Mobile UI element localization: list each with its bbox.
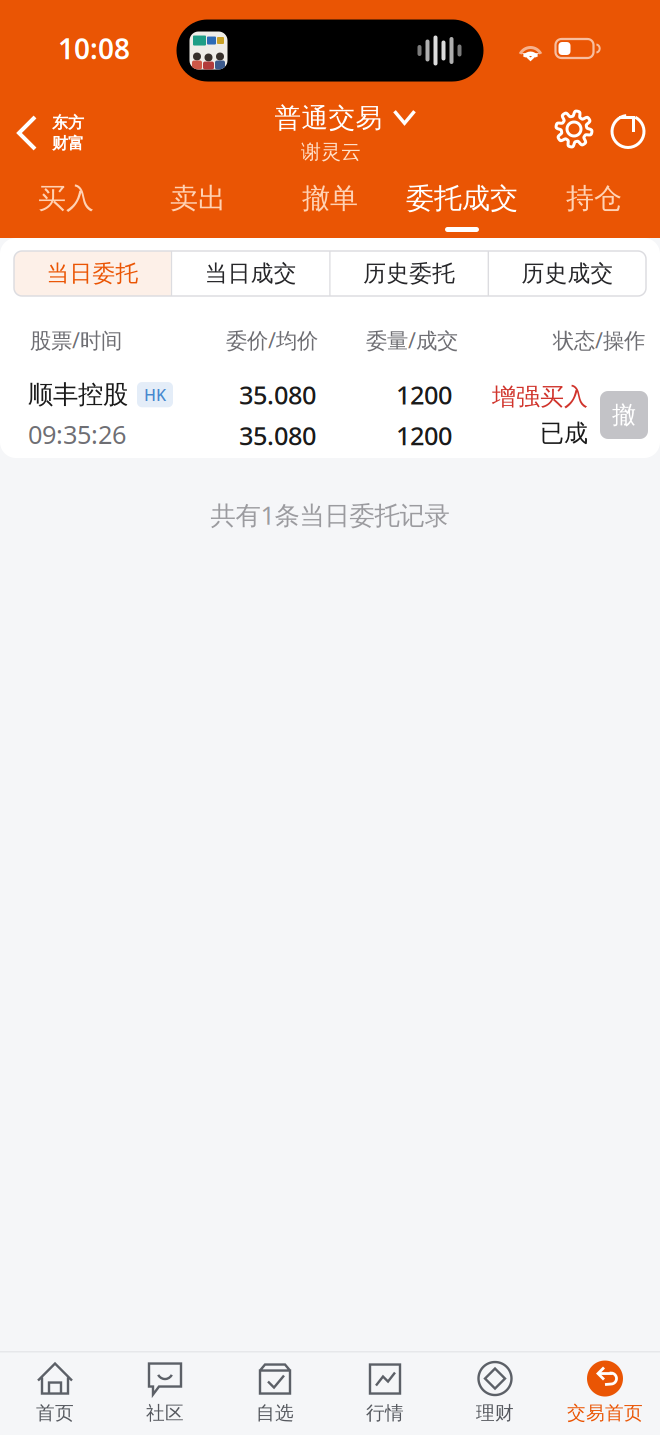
staticText: 买入 (38, 181, 94, 216)
staticText: 行情 (366, 1401, 404, 1424)
button[interactable]: 设置 (553, 108, 595, 150)
button[interactable]: 首页 (0, 1351, 110, 1435)
button[interactable]: 行情 (330, 1351, 440, 1435)
staticText: 财富 (52, 133, 84, 153)
staticText: 顺丰控股 (28, 379, 128, 410)
staticText: 理财 (476, 1401, 514, 1424)
staticText: 撤 (612, 400, 636, 430)
staticText: 自选 (256, 1401, 294, 1424)
button[interactable]: 买入 (0, 170, 132, 238)
staticText: 股票/时间 (30, 326, 122, 354)
staticText: 10:08 (58, 30, 130, 67)
staticText: 委托成交 (406, 181, 518, 216)
button[interactable]: 自选 (220, 1351, 330, 1435)
staticText: 社区 (146, 1401, 184, 1424)
staticText: 撤单 (302, 181, 358, 216)
staticText: 状态/操作 (553, 326, 645, 354)
staticText: 当日委托 (46, 260, 138, 287)
button[interactable]: 撤单 (264, 170, 396, 238)
staticText: 历史委托 (363, 260, 455, 287)
button[interactable]: 普通交易 (242, 102, 417, 164)
staticText: 首页 (36, 1401, 74, 1424)
button[interactable]: 理财 (440, 1351, 550, 1435)
staticText: 谢灵云 (301, 140, 361, 164)
staticText: 已成 (540, 418, 588, 448)
staticText: 1200 (396, 378, 452, 411)
button[interactable]: 当日成交 (172, 251, 329, 296)
button[interactable]: 返回 (0, 96, 94, 170)
staticText: 09:35:26 (28, 417, 126, 451)
staticText: 委量/成交 (366, 326, 458, 354)
staticText: 卖出 (170, 181, 226, 216)
staticText: 持仓 (566, 181, 622, 216)
staticText: 普通交易 (274, 102, 382, 135)
staticText: 共有1条当日委托记录 (210, 498, 449, 532)
button[interactable]: 卖出 (132, 170, 264, 238)
staticText: 东方 (52, 113, 84, 132)
staticText: 当日成交 (205, 260, 297, 287)
button[interactable]: 社区 (110, 1351, 220, 1435)
staticText: HK (144, 384, 166, 405)
staticText: 1200 (396, 418, 452, 452)
button[interactable]: 当日委托 (14, 251, 171, 296)
staticText: 增强买入 (492, 382, 588, 411)
staticText: 委价/均价 (226, 326, 318, 354)
button[interactable]: 刷新 (607, 108, 649, 150)
button[interactable]: 撤 (600, 391, 648, 439)
button[interactable]: 历史委托 (331, 251, 488, 296)
staticText: 35.080 (239, 418, 316, 452)
button[interactable]: 交易首页 (550, 1351, 660, 1435)
staticText: 历史成交 (522, 260, 614, 287)
button[interactable]: 历史成交 (489, 251, 646, 296)
staticText: 35.080 (239, 378, 316, 411)
button[interactable]: 持仓 (528, 170, 660, 238)
button[interactable]: 委托成交 (396, 170, 528, 238)
staticText: 交易首页 (567, 1401, 643, 1424)
